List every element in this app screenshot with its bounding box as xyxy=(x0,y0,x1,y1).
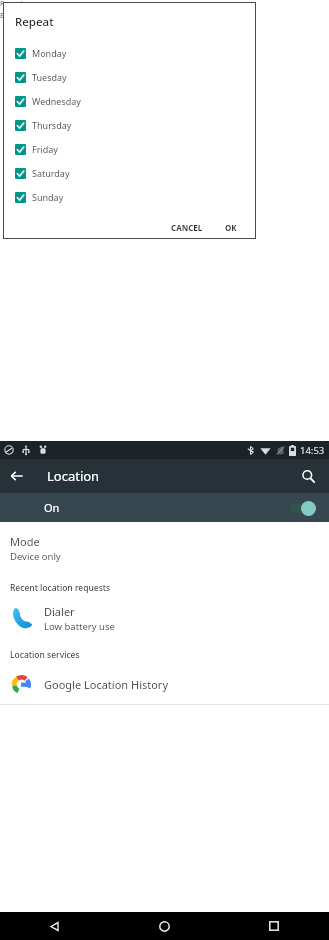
staticText: Friday xyxy=(32,143,58,155)
staticText: Wednesday xyxy=(32,95,81,107)
button[interactable]: CANCEL xyxy=(164,217,210,238)
staticText: Location xyxy=(47,467,100,485)
staticText: Monday xyxy=(32,47,67,59)
staticText: CANCEL xyxy=(171,222,203,233)
button[interactable]: Sunday xyxy=(3,185,256,209)
button[interactable]: Mode xyxy=(0,533,329,566)
staticText: 14:53 xyxy=(300,444,325,457)
button[interactable]: Back xyxy=(0,459,34,493)
button[interactable]: Tuesday xyxy=(3,65,256,89)
staticText: Device only xyxy=(10,550,61,563)
button[interactable]: Search xyxy=(291,459,325,493)
button[interactable]: Saturday xyxy=(3,161,256,185)
staticText: Thursday xyxy=(32,119,72,131)
staticText: Repeat xyxy=(15,14,54,30)
button[interactable]: Friday xyxy=(3,137,256,161)
button[interactable]: Monday xyxy=(3,41,256,65)
staticText: OK xyxy=(225,222,237,233)
staticText: Sunday xyxy=(32,191,64,203)
staticText: Repeat xyxy=(0,0,24,9)
staticText: Location services xyxy=(10,649,80,661)
button[interactable]: Recent apps xyxy=(219,912,329,940)
staticText: Google Location History xyxy=(44,677,169,692)
button[interactable]: OK xyxy=(218,217,244,238)
button[interactable]: Thursday xyxy=(3,113,256,137)
staticText: Saturday xyxy=(32,167,70,179)
button[interactable]: Dialer xyxy=(0,602,329,634)
staticText: Low battery use xyxy=(44,620,115,633)
staticText: Tuesday xyxy=(32,71,67,83)
staticText: Mode xyxy=(10,534,40,549)
button[interactable]: Back xyxy=(0,912,109,940)
staticText: E xyxy=(0,11,4,21)
staticText: On xyxy=(44,500,60,515)
button[interactable]: Wednesday xyxy=(3,89,256,113)
button[interactable]: On xyxy=(0,493,329,522)
button[interactable]: Google Location History xyxy=(0,670,329,698)
button[interactable]: Home xyxy=(109,912,219,940)
staticText: Recent location requests xyxy=(10,582,111,594)
staticText: Dialer xyxy=(44,604,75,619)
